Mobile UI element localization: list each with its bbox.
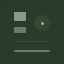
button[interactable]: More options: [34, 15, 50, 31]
button[interactable]: More options: [14, 12, 50, 33]
button[interactable]: [14, 50, 50, 52]
